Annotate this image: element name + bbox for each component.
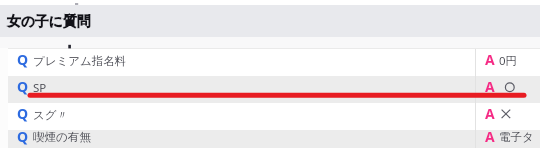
- staticText: A: [485, 127, 495, 145]
- staticText: 女の子に質問: [7, 13, 91, 30]
- staticText: SP: [33, 80, 47, 96]
- staticText: A: [485, 77, 495, 96]
- button[interactable]: 女の子に質問: [0, 5, 540, 37]
- staticText: 0円: [499, 53, 518, 69]
- staticText: A: [485, 104, 495, 123]
- staticText: Q: [17, 77, 29, 96]
- button[interactable]: Q: [8, 130, 540, 148]
- staticText: プレミアム指名料: [33, 54, 127, 68]
- staticText: Q: [17, 127, 29, 145]
- staticText: 電子タバコのみ: [499, 130, 540, 144]
- button[interactable]: Q: [8, 76, 540, 103]
- button[interactable]: Q: [8, 49, 540, 76]
- staticText: 喫煙の有無: [33, 130, 91, 144]
- staticText: A: [485, 50, 495, 69]
- staticText: スグ〃: [33, 108, 69, 122]
- button[interactable]: Q: [8, 103, 540, 130]
- staticText: Q: [17, 104, 29, 123]
- staticText: Q: [17, 50, 29, 69]
